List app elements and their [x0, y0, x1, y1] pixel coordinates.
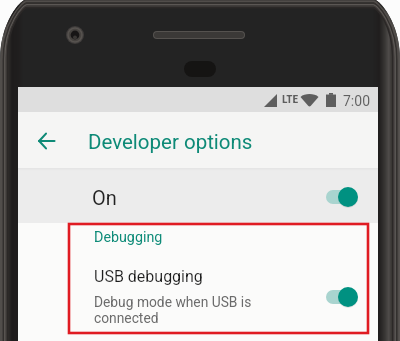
button[interactable]: On — [18, 171, 378, 223]
staticText: Debugging — [94, 229, 163, 246]
staticText: 7:00 — [343, 93, 370, 109]
staticText: Developer options — [88, 130, 253, 154]
staticText: LTE — [282, 92, 299, 105]
staticText: USB debugging — [94, 267, 203, 286]
staticText: On — [92, 186, 117, 209]
button[interactable]: USB debugging — [18, 267, 378, 326]
button[interactable]: Navigate up — [28, 123, 64, 159]
staticText: Debug mode when USB is connected — [94, 294, 252, 326]
